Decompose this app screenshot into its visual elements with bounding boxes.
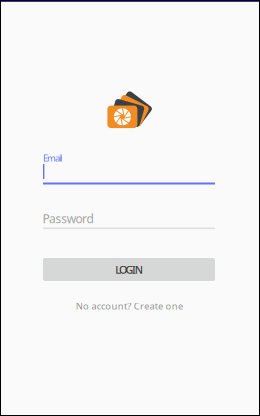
button[interactable]: No account? Create one — [76, 300, 183, 312]
staticText: LOGIN — [115, 262, 143, 277]
staticText: Password — [42, 210, 94, 226]
staticText: Email — [43, 152, 62, 164]
staticText: No account? Create one — [76, 300, 183, 312]
button[interactable]: LOGIN — [43, 258, 215, 281]
